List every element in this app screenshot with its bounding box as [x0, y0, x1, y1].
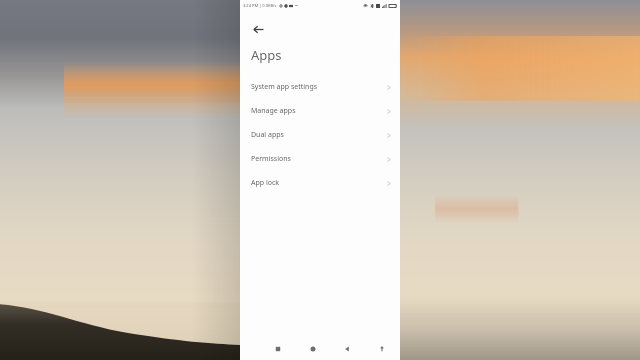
staticText: Manage apps — [251, 106, 296, 116]
staticText: Apps — [251, 46, 282, 64]
button[interactable]: Home — [303, 339, 323, 359]
button[interactable]: App lock — [240, 171, 400, 195]
staticText: Dual apps — [251, 130, 284, 140]
button[interactable]: Recent apps — [268, 339, 288, 359]
button[interactable]: Dual apps — [240, 123, 400, 147]
staticText: System app settings — [251, 82, 318, 92]
button[interactable]: Manage apps — [240, 99, 400, 123]
button[interactable]: System app settings — [240, 75, 400, 99]
staticText: App lock — [251, 178, 280, 188]
button[interactable]: Back — [337, 339, 357, 359]
button[interactable]: Permissions — [240, 147, 400, 171]
button[interactable]: Hide navigation bar — [372, 339, 392, 359]
staticText: Permissions — [251, 154, 291, 164]
button[interactable]: Back — [247, 18, 269, 40]
staticText: 3:24 PM | 0.0KB/s — [243, 3, 277, 8]
